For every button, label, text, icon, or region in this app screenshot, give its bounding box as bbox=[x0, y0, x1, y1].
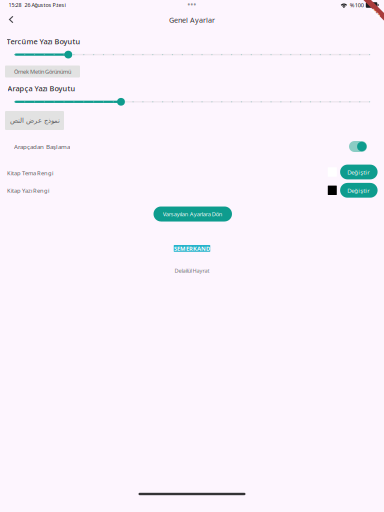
staticText: SEMERKAND bbox=[174, 244, 210, 252]
staticText: 15:28 26 Ağustos P.tesi bbox=[8, 1, 65, 9]
staticText: BETA bbox=[370, 10, 381, 16]
button[interactable]: Geri bbox=[1, 9, 21, 30]
button[interactable]: Arapçadan Başlama bbox=[14, 138, 367, 154]
staticText: Delailül Hayrat bbox=[174, 267, 209, 274]
staticText: Varsayılan Ayarlara Dön bbox=[163, 210, 223, 218]
staticText: Arapçadan Başlama bbox=[14, 142, 70, 151]
staticText: Arapça Yazı Boyutu bbox=[7, 83, 75, 93]
staticText: Tercüme Yazı Boyutu bbox=[6, 36, 80, 46]
button[interactable]: Değiştir bbox=[328, 165, 378, 179]
staticText: نموذج عرض النص bbox=[9, 117, 59, 124]
staticText: Değiştir bbox=[347, 186, 370, 194]
button[interactable]: Değiştir bbox=[328, 183, 378, 198]
staticText: ••• bbox=[187, 0, 196, 10]
staticText: %100 bbox=[350, 1, 364, 9]
staticText: Kitap Tema Rengi bbox=[7, 169, 53, 177]
staticText: Kitap Yazı Rengi bbox=[7, 187, 49, 194]
staticText: Değiştir bbox=[347, 168, 370, 176]
staticText: Genel Ayarlar bbox=[169, 15, 215, 25]
staticText: Örnek Metin Görünümü bbox=[14, 68, 71, 75]
button[interactable]: Varsayılan Ayarlara Dön bbox=[153, 206, 232, 221]
